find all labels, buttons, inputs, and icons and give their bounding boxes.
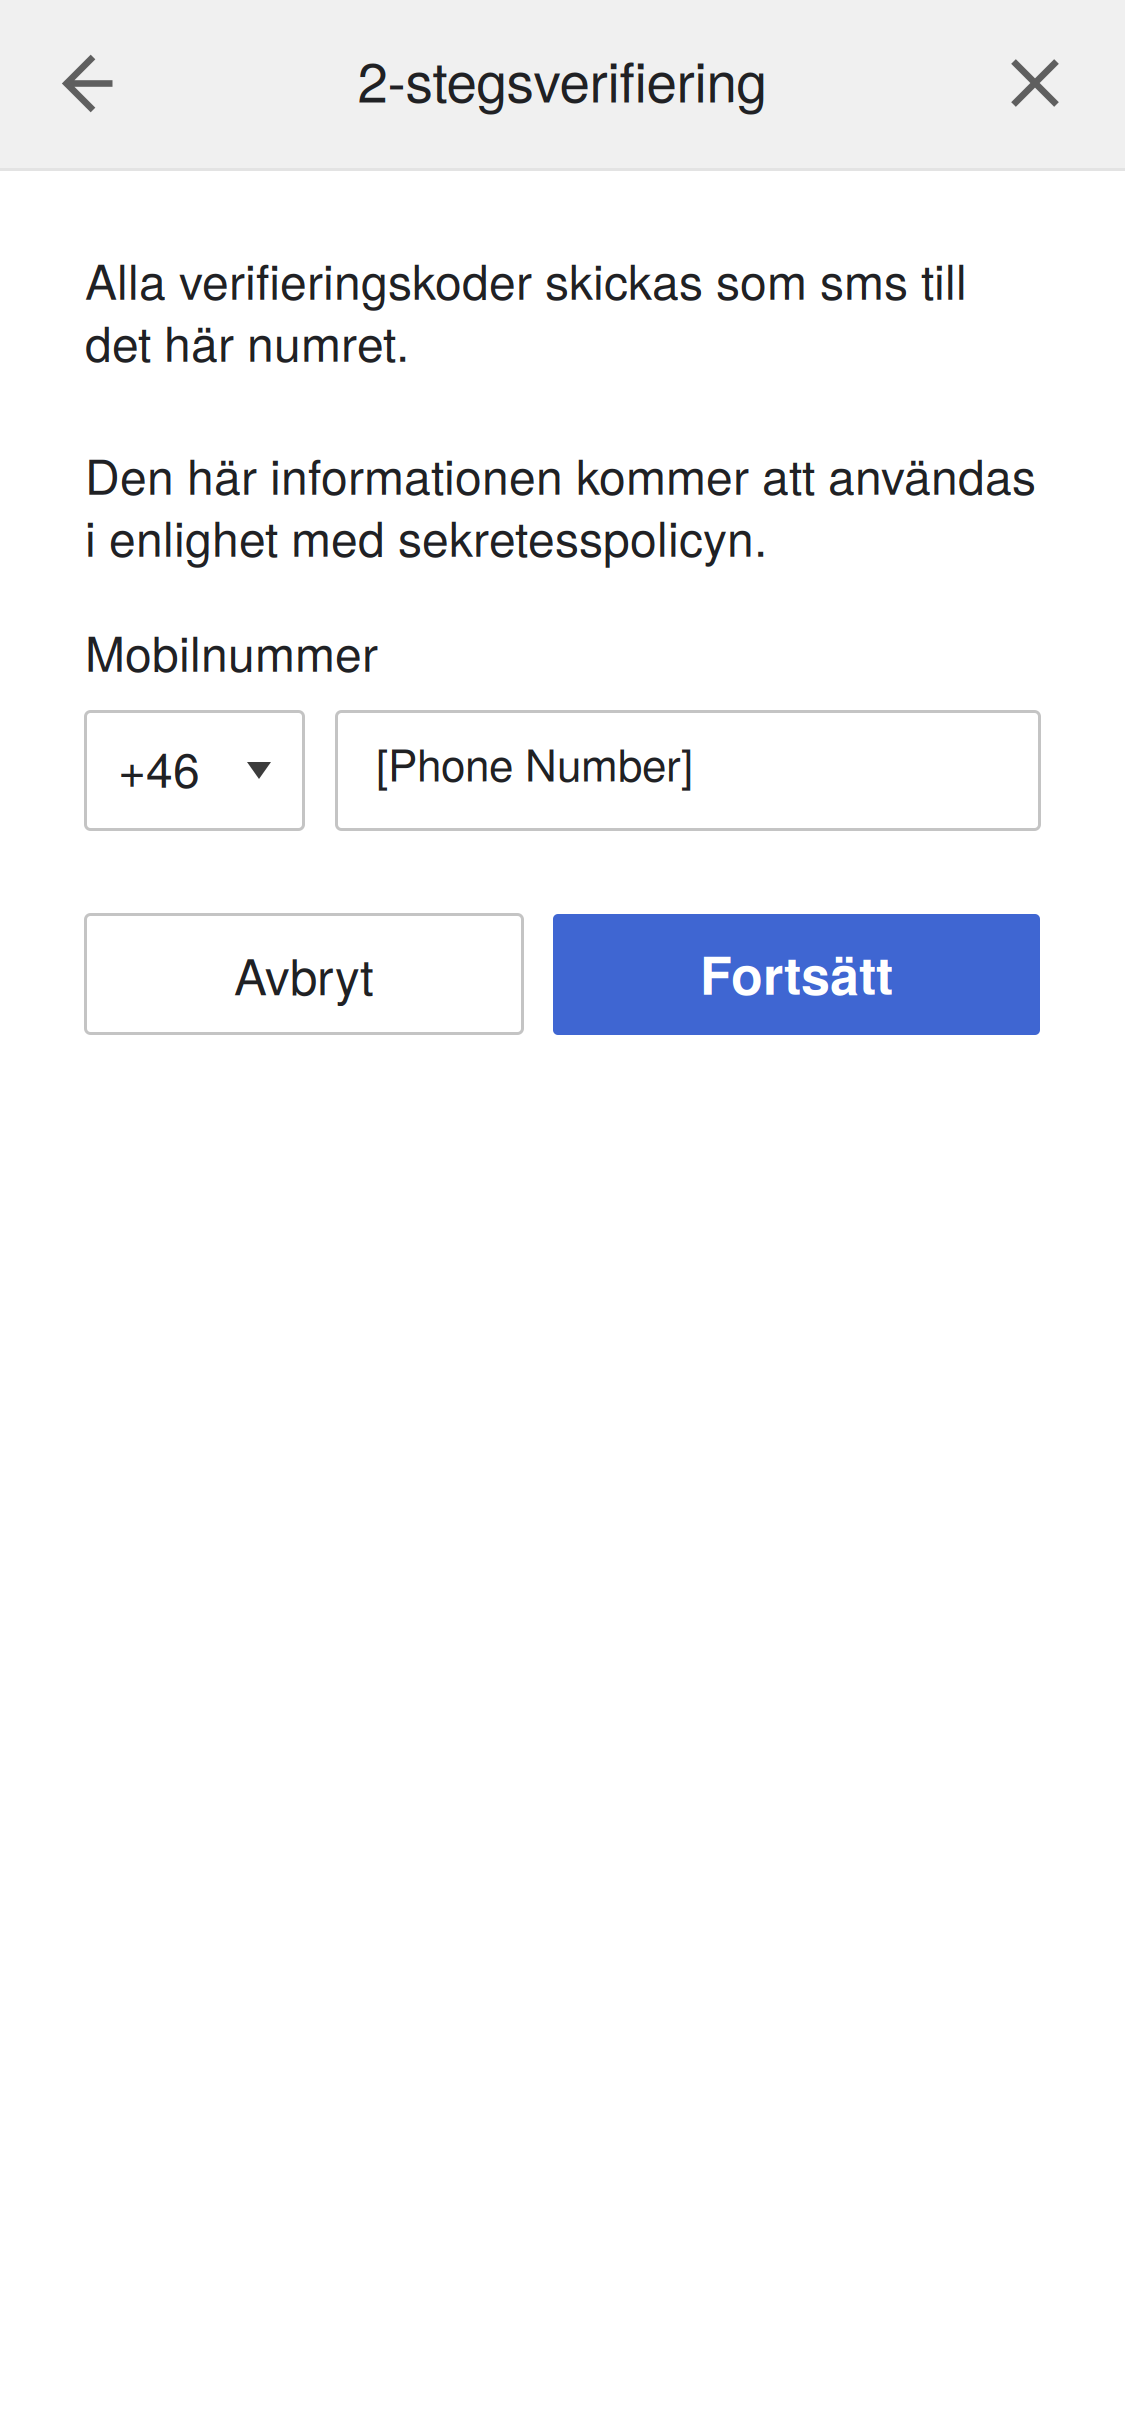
button[interactable]: +46 xyxy=(84,710,305,831)
staticText: Fortsätt xyxy=(700,936,893,1011)
staticText: +46 xyxy=(118,733,200,801)
staticText: [Phone Number] xyxy=(376,731,693,794)
staticText: Alla verifieringskoder skickas som sms t… xyxy=(85,245,967,313)
staticText: i enlighet med sekretesspolicyn. xyxy=(85,502,767,570)
button[interactable]: Fortsätt xyxy=(553,914,1040,1035)
staticText: Den här informationen kommer att använda… xyxy=(85,440,1036,508)
staticText: 2-stegsverifiering xyxy=(357,40,766,118)
button[interactable]: Back xyxy=(33,27,145,139)
button[interactable]: Close xyxy=(979,27,1091,139)
staticText: Avbryt xyxy=(234,939,374,1009)
staticText: Mobilnummer xyxy=(85,617,378,685)
staticText: det här numret. xyxy=(85,307,409,375)
button[interactable]: [Phone Number] xyxy=(335,710,1041,831)
button[interactable]: Avbryt xyxy=(84,913,524,1035)
